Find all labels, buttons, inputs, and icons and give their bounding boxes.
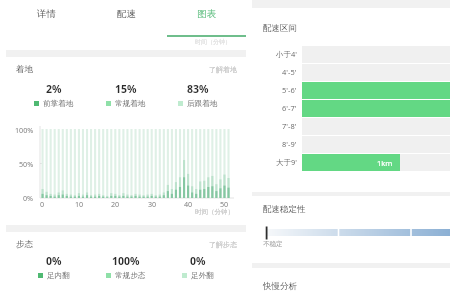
staticText: 详情 [37, 8, 56, 20]
button[interactable]: 7'-8' [252, 117, 450, 135]
staticText: 100% [112, 254, 140, 268]
staticText: 0 [40, 199, 45, 209]
button[interactable]: 了解步态 [209, 240, 237, 249]
staticText: 配速 [117, 8, 136, 20]
staticText: 常规步态 [115, 271, 146, 280]
staticText: 30 [148, 199, 157, 209]
staticText: 6'-7' [282, 103, 297, 113]
button[interactable]: 大于9' [252, 153, 450, 171]
staticText: 40 [184, 199, 193, 209]
staticText: 后跟着地 [187, 99, 218, 108]
staticText: 0% [46, 254, 62, 268]
staticText: 1km [377, 158, 393, 168]
staticText: 常规着地 [115, 99, 146, 108]
staticText: 7'-8' [282, 121, 297, 131]
staticText: 大于9' [276, 157, 297, 167]
staticText: 83% [187, 82, 209, 96]
staticText: 10 [75, 199, 84, 209]
staticText: 5'-6' [282, 85, 297, 95]
staticText: 0% [23, 193, 34, 203]
staticText: 时间（分钟） [195, 208, 234, 216]
button[interactable]: 6'-7' [252, 99, 450, 117]
staticText: 20 [111, 199, 120, 209]
staticText: 4'-5' [282, 67, 297, 77]
staticText: 图表 [197, 8, 216, 20]
staticText: 足内翻 [47, 271, 70, 280]
staticText: 不稳定 [263, 240, 283, 248]
staticText: 快慢分析 [263, 281, 297, 292]
staticText: 0% [190, 254, 206, 268]
staticText: 了解着地 [209, 65, 237, 74]
staticText: 50% [19, 159, 34, 169]
staticText: 足外翻 [191, 271, 214, 280]
button[interactable]: 了解着地 [209, 65, 237, 74]
button[interactable]: 8'-9' [252, 135, 450, 153]
button[interactable]: 4'-5' [252, 63, 450, 81]
button[interactable]: 小于4' [252, 45, 450, 63]
button[interactable]: 详情 [6, 0, 86, 37]
staticText: 8'-9' [282, 139, 297, 149]
staticText: 时间（分钟） [195, 38, 231, 46]
button[interactable]: 配速 [86, 0, 166, 37]
staticText: 着地 [16, 64, 33, 75]
staticText: 15% [115, 82, 137, 96]
staticText: 前掌着地 [43, 99, 74, 108]
staticText: 50 [220, 199, 229, 209]
staticText: 配速稳定性 [263, 204, 306, 215]
staticText: 100% [15, 125, 34, 135]
button[interactable]: 图表 [166, 0, 246, 37]
staticText: 小于4' [276, 49, 297, 59]
staticText: 步态 [16, 239, 33, 250]
staticText: 了解步态 [209, 240, 237, 249]
staticText: 2% [46, 82, 62, 96]
button[interactable]: 5'-6' [252, 81, 450, 99]
staticText: 配速区间 [263, 23, 297, 34]
